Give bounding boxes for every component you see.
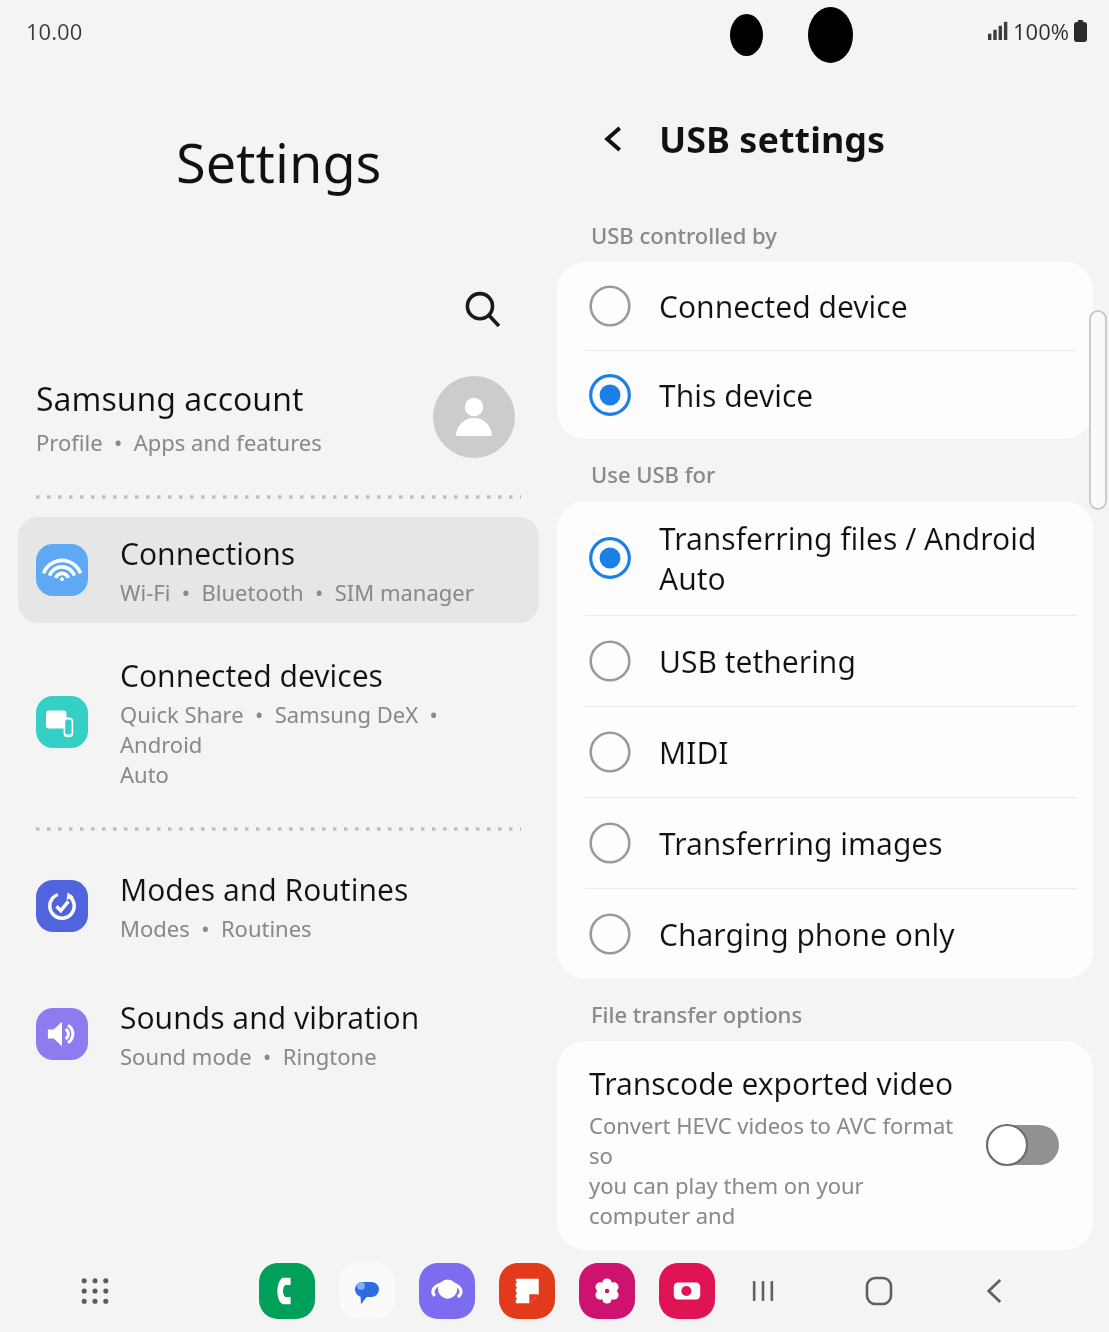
staticText: Sound mode • Ringtone bbox=[120, 1041, 377, 1071]
staticText: USB tethering bbox=[659, 641, 856, 682]
button[interactable]: Connected devices bbox=[18, 639, 539, 805]
button[interactable]: Back bbox=[585, 110, 643, 168]
staticText: Settings bbox=[176, 125, 382, 199]
button[interactable]: Back bbox=[969, 1265, 1021, 1317]
button[interactable]: Search bbox=[451, 278, 515, 342]
staticText: This device bbox=[659, 375, 814, 416]
staticText: USB controlled by bbox=[591, 220, 777, 250]
staticText: MIDI bbox=[659, 732, 729, 773]
button[interactable]: Charging phone only bbox=[557, 889, 1093, 979]
button[interactable]: Transcode exported video toggle bbox=[981, 1119, 1065, 1171]
button[interactable]: Modes and Routines bbox=[18, 853, 539, 959]
button[interactable]: Connections bbox=[18, 517, 539, 623]
staticText: 100% bbox=[1013, 16, 1070, 46]
staticText: Convert HEVC videos to AVC format so you… bbox=[589, 1110, 965, 1226]
staticText: Transferring files / Android Auto bbox=[659, 518, 1037, 599]
button[interactable]: Transferring files / Android Auto bbox=[557, 501, 1093, 615]
button[interactable]: MIDI bbox=[557, 707, 1093, 797]
staticText: Samsung account bbox=[36, 377, 304, 421]
staticText: Connected device bbox=[659, 286, 908, 327]
staticText: Quick Share • Samsung DeX • Android Auto bbox=[120, 699, 521, 789]
button[interactable]: Notes bbox=[499, 1263, 555, 1319]
staticText: Transferring images bbox=[659, 823, 943, 864]
staticText: File transfer options bbox=[591, 999, 803, 1029]
button[interactable]: Sounds and vibration bbox=[18, 981, 539, 1087]
staticText: Use USB for bbox=[591, 459, 716, 489]
button[interactable]: Transcode exported video bbox=[557, 1041, 1093, 1250]
button[interactable]: Gallery bbox=[579, 1263, 635, 1319]
button[interactable]: Home bbox=[853, 1265, 905, 1317]
button[interactable]: Phone bbox=[259, 1263, 315, 1319]
button[interactable]: Samsung account bbox=[0, 357, 557, 477]
staticText: USB settings bbox=[659, 115, 886, 164]
button[interactable]: Transferring images bbox=[557, 798, 1093, 888]
staticText: Profile • Apps and features bbox=[36, 427, 322, 457]
button[interactable]: Messages bbox=[339, 1263, 395, 1319]
staticText: Connected devices bbox=[120, 655, 383, 696]
staticText: Wi-Fi • Bluetooth • SIM manager bbox=[120, 577, 474, 607]
button[interactable]: Apps bbox=[70, 1266, 120, 1316]
staticText: Transcode exported video bbox=[589, 1063, 954, 1104]
staticText: Charging phone only bbox=[659, 914, 955, 955]
staticText: Modes • Routines bbox=[120, 913, 312, 943]
button[interactable]: This device bbox=[557, 351, 1093, 439]
button[interactable]: Internet bbox=[419, 1263, 475, 1319]
button[interactable]: USB tethering bbox=[557, 616, 1093, 706]
button[interactable]: Connected device bbox=[557, 262, 1093, 350]
staticText: Modes and Routines bbox=[120, 869, 409, 910]
staticText: Sounds and vibration bbox=[120, 997, 420, 1038]
staticText: Connections bbox=[120, 533, 296, 574]
button[interactable]: Camera bbox=[659, 1263, 715, 1319]
button[interactable]: Recents bbox=[737, 1265, 789, 1317]
staticText: 10.00 bbox=[26, 16, 83, 46]
